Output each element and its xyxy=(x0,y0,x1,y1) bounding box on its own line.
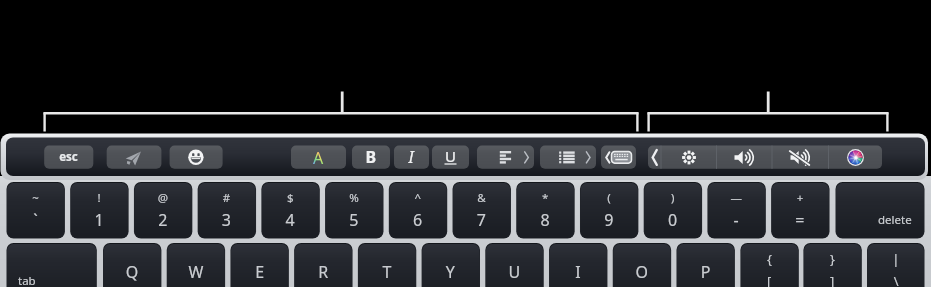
button[interactable]: R xyxy=(294,243,352,286)
button[interactable]: = xyxy=(771,182,829,239)
button[interactable]: 0 xyxy=(643,182,701,239)
button[interactable]: P xyxy=(676,243,734,286)
button[interactable]: T xyxy=(357,243,415,286)
button[interactable]: Send xyxy=(106,145,161,168)
button[interactable]: Text alignment xyxy=(477,145,534,168)
button[interactable]: W xyxy=(166,243,224,286)
button[interactable]: ] xyxy=(803,243,861,286)
button[interactable]: Show keyboard controls xyxy=(601,145,636,168)
button[interactable]: Underline xyxy=(432,145,469,168)
button[interactable]: 8 xyxy=(516,182,574,239)
button[interactable]: Brightness xyxy=(661,145,717,168)
button[interactable]: Y xyxy=(421,243,479,286)
button[interactable]: 9 xyxy=(579,182,637,239)
button[interactable]: ` xyxy=(6,182,64,239)
button[interactable]: 1 xyxy=(70,182,128,239)
button[interactable]: Lists xyxy=(540,145,596,168)
button[interactable]: Text colour xyxy=(291,145,346,168)
button[interactable]: O xyxy=(612,243,670,286)
button[interactable]: 7 xyxy=(452,182,510,239)
button[interactable]: Bold xyxy=(352,145,390,168)
button[interactable]: backslash xyxy=(867,243,925,286)
button[interactable]: 3 xyxy=(197,182,255,239)
button[interactable]: Siri xyxy=(828,145,882,168)
button[interactable]: 2 xyxy=(133,182,191,239)
button[interactable]: Mute xyxy=(772,145,829,168)
button[interactable]: Q xyxy=(103,243,161,286)
button[interactable]: delete xyxy=(835,182,924,239)
button[interactable]: Escape xyxy=(44,145,93,168)
button[interactable]: 4 xyxy=(261,182,319,239)
button[interactable]: Expand Control Strip xyxy=(648,145,661,168)
button[interactable]: 5 xyxy=(325,182,383,239)
button[interactable]: 6 xyxy=(388,182,446,239)
button[interactable]: Emoji xyxy=(169,145,222,168)
button[interactable]: - xyxy=(707,182,765,239)
button[interactable]: Volume up xyxy=(716,145,772,168)
button[interactable]: [ xyxy=(740,243,798,286)
button[interactable]: E xyxy=(230,243,288,286)
button[interactable]: U xyxy=(485,243,543,286)
button[interactable]: I xyxy=(549,243,607,286)
button[interactable]: Italic xyxy=(394,145,429,168)
button[interactable]: tab xyxy=(6,243,96,286)
